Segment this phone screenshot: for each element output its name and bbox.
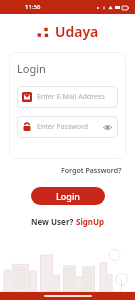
staticText: SignUp [76, 216, 105, 227]
button[interactable]: SignUp [76, 216, 105, 227]
staticText: Udaya [55, 22, 99, 41]
button[interactable]: Forgot Password? [59, 164, 124, 178]
staticText: New User? [31, 216, 76, 227]
button[interactable]: Login [31, 187, 105, 205]
staticText: Login [56, 190, 80, 202]
button[interactable]: Show password [102, 122, 113, 133]
staticText: Enter Password [37, 122, 102, 132]
button[interactable]: Enter E-Mail Address [17, 86, 118, 108]
staticText: Login [17, 61, 46, 76]
staticText: Enter E-Mail Address [37, 92, 113, 102]
button[interactable]: Enter Password [17, 116, 118, 138]
staticText: Forgot Password? [61, 166, 122, 176]
staticText: 11:56 [25, 3, 41, 11]
